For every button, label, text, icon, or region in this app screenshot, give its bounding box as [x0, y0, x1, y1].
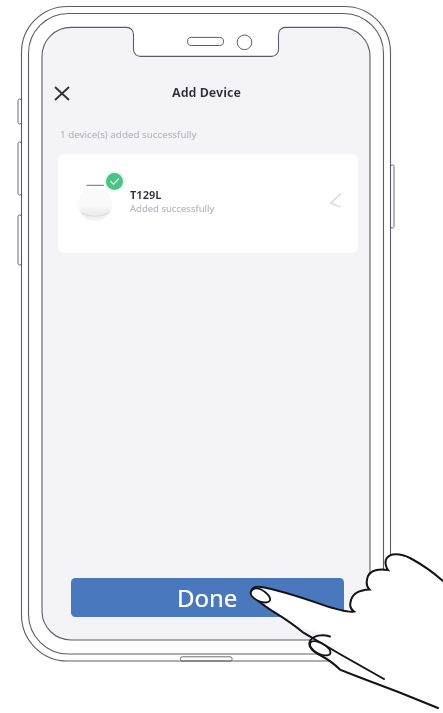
button[interactable]: Rename device: [325, 188, 347, 210]
button[interactable]: Done: [71, 578, 344, 617]
staticText: Done: [177, 581, 238, 614]
staticText: 1 device(s) added successfully: [60, 128, 197, 141]
button[interactable]: T129L: [58, 154, 358, 253]
staticText: Add Device: [172, 84, 241, 101]
staticText: Added successfully: [130, 202, 215, 215]
button[interactable]: Close: [44, 75, 80, 111]
staticText: T129L: [130, 187, 162, 202]
